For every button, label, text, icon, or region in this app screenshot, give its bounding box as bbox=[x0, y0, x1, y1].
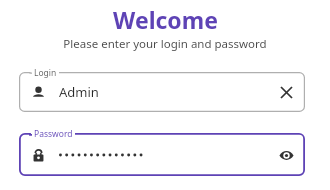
button[interactable]: Show password bbox=[274, 143, 298, 167]
staticText: Password bbox=[34, 128, 73, 140]
staticText: Login bbox=[34, 67, 57, 79]
button[interactable]: Clear login bbox=[274, 80, 298, 104]
staticText: Welcome bbox=[113, 4, 218, 35]
staticText: Admin bbox=[59, 83, 99, 101]
staticText: Please enter your login and password bbox=[63, 36, 267, 52]
button[interactable]: Show password bbox=[19, 133, 305, 176]
button[interactable]: Admin bbox=[19, 72, 305, 112]
